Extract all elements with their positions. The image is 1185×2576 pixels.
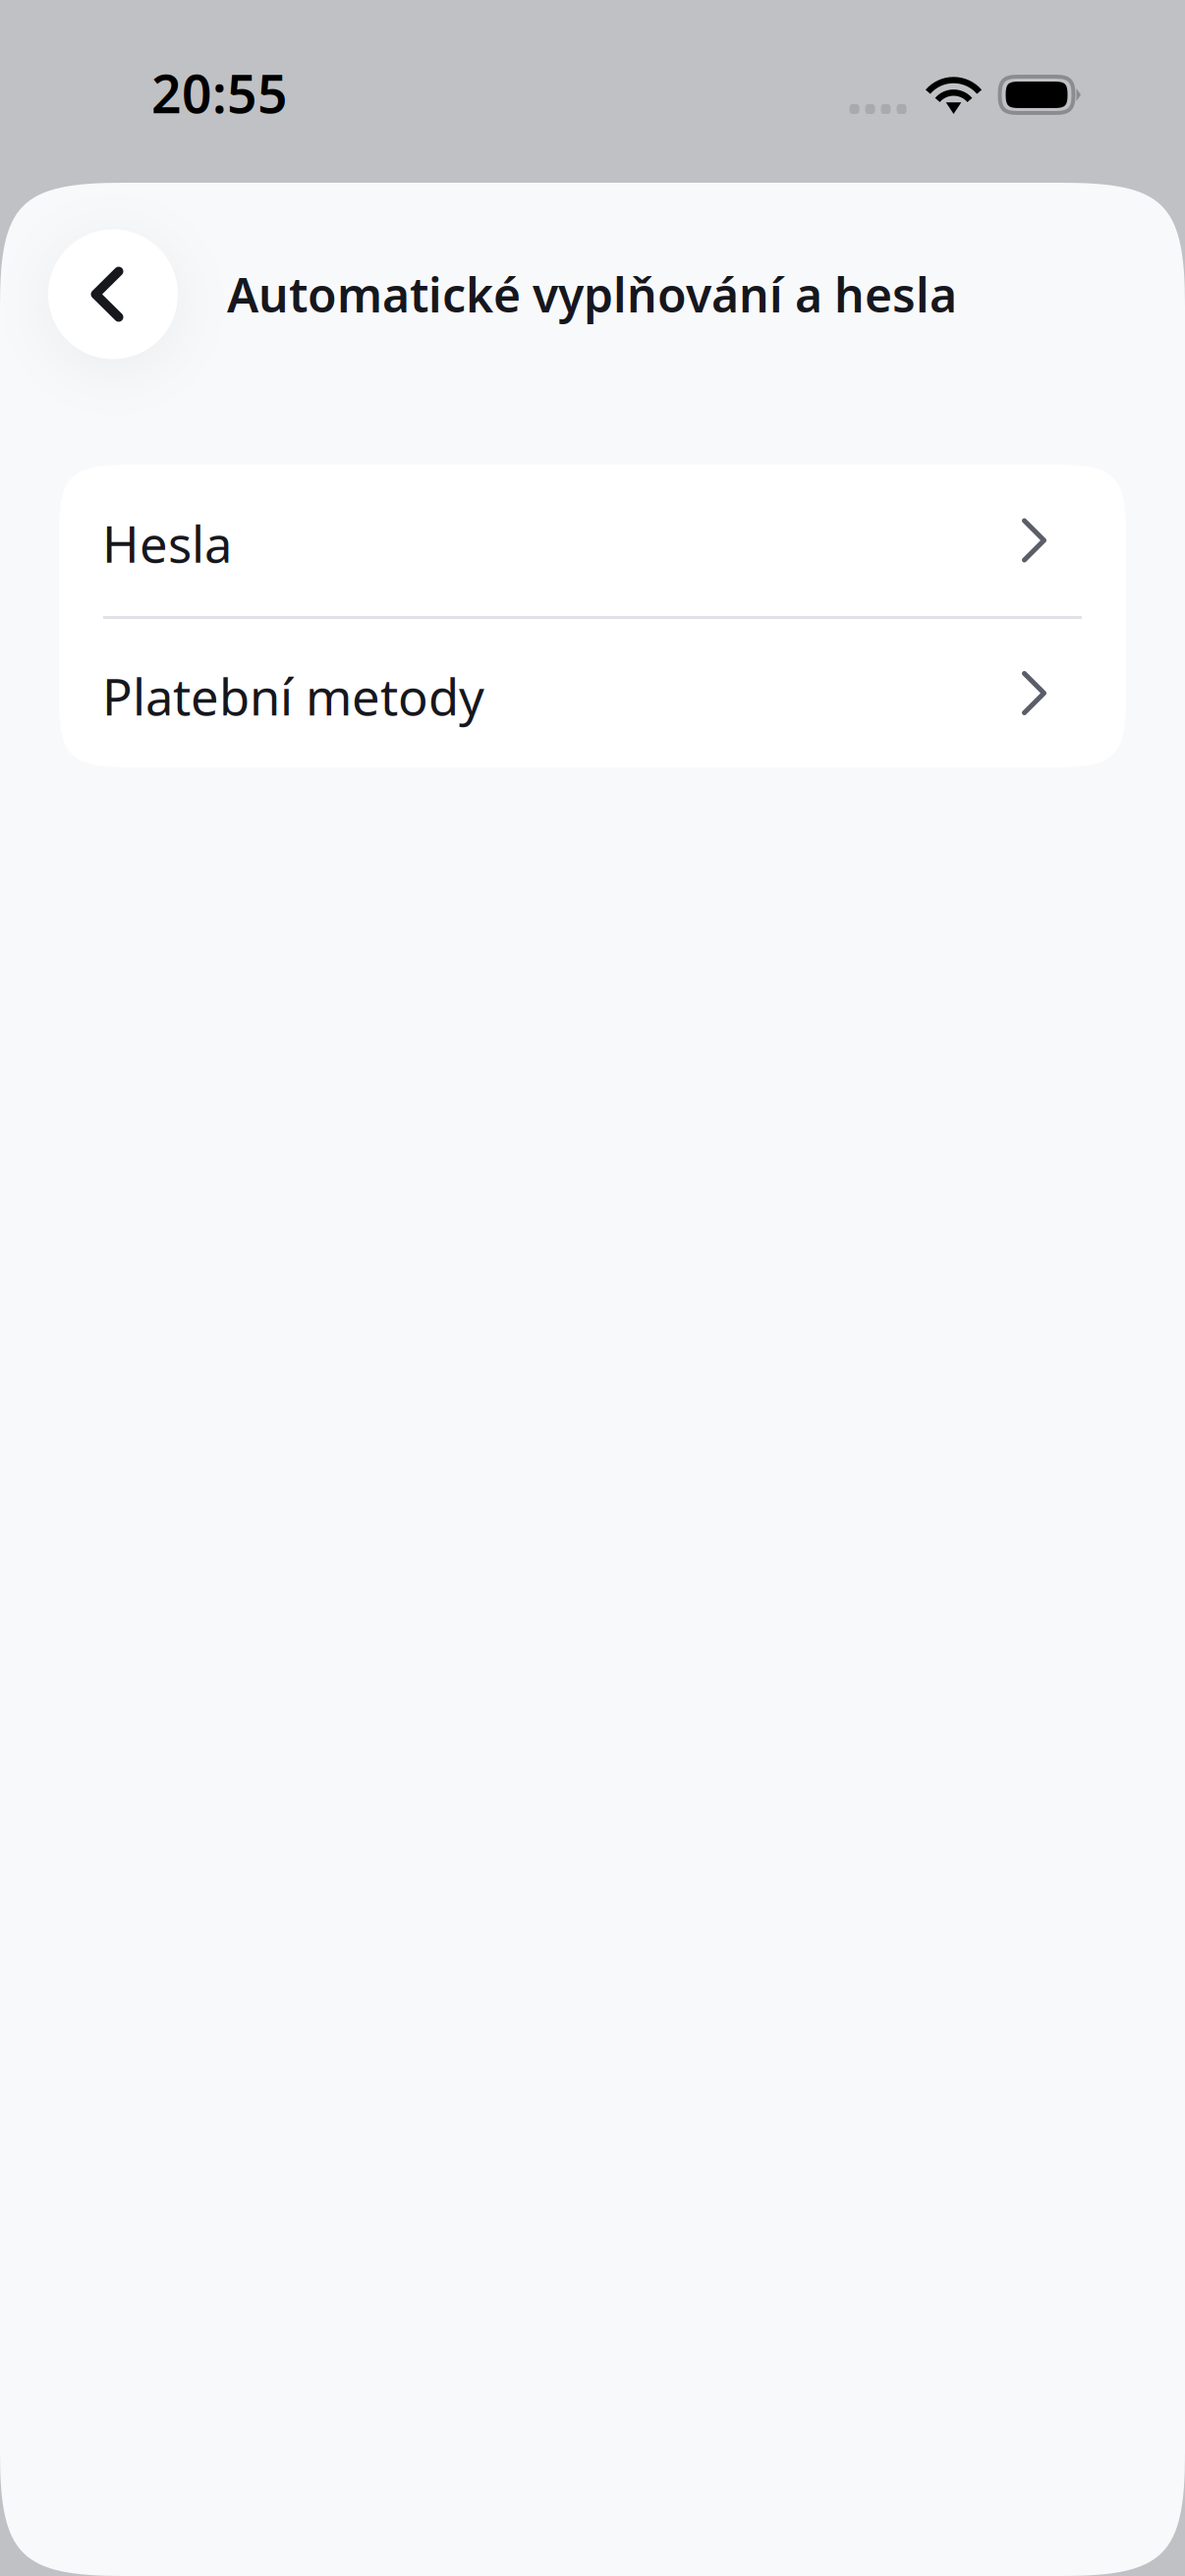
button[interactable]: Hesla xyxy=(59,465,1126,616)
staticText: Hesla xyxy=(102,510,232,576)
button[interactable]: Platební metody xyxy=(59,619,1126,767)
staticText: Platební metody xyxy=(102,663,484,729)
button[interactable]: Back xyxy=(48,229,178,359)
staticText: Automatické vyplňování a hesla xyxy=(227,263,957,325)
staticText: 20:55 xyxy=(151,58,288,128)
